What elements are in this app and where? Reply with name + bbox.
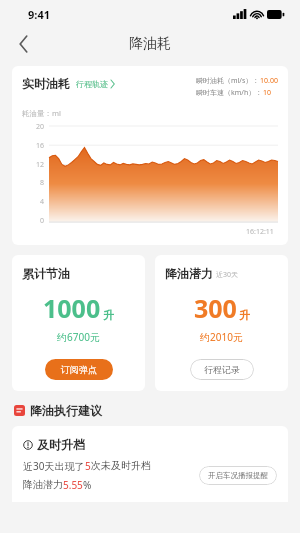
button[interactable]: 及时升档 bbox=[12, 426, 288, 502]
staticText: 行程记录 bbox=[204, 364, 240, 375]
button[interactable]: 开启车况播报提醒 bbox=[199, 466, 277, 485]
staticText: 8 bbox=[39, 178, 44, 188]
button[interactable]: 累计节油 bbox=[12, 255, 145, 391]
staticText: 降油执行建议 bbox=[30, 403, 102, 418]
staticText: 降油潜力 bbox=[165, 266, 213, 281]
staticText: 近30天 bbox=[216, 270, 239, 280]
staticText: 近30天出现了 bbox=[23, 459, 85, 473]
staticText: 9:41 bbox=[28, 7, 50, 22]
staticText: 降油潜力 bbox=[23, 478, 63, 491]
staticText: 瞬时车速（km/h）： bbox=[196, 88, 263, 98]
staticText: 次未及时升档 bbox=[91, 459, 151, 472]
staticText: 16 bbox=[35, 141, 44, 151]
staticText: 0 bbox=[39, 216, 44, 226]
staticText: 升 bbox=[103, 308, 114, 322]
staticText: 行程轨迹 bbox=[76, 79, 108, 89]
staticText: 约6700元 bbox=[57, 330, 100, 344]
staticText: 升 bbox=[239, 308, 250, 322]
button[interactable]: 降油潜力 bbox=[155, 255, 288, 391]
staticText: 5.55 bbox=[63, 478, 83, 492]
staticText: 4 bbox=[39, 197, 44, 207]
staticText: 约2010元 bbox=[200, 330, 243, 344]
staticText: 12 bbox=[35, 160, 44, 170]
button[interactable]: Back bbox=[10, 30, 38, 58]
staticText: 16:12:11 bbox=[246, 227, 274, 237]
staticText: % bbox=[83, 478, 92, 492]
staticText: 订阅弹点 bbox=[61, 364, 97, 375]
button[interactable]: 行程轨迹 bbox=[76, 79, 115, 89]
staticText: 10.00 bbox=[260, 76, 278, 86]
button[interactable]: 订阅弹点 bbox=[45, 359, 113, 380]
staticText: 300 bbox=[194, 291, 237, 325]
button[interactable]: 行程记录 bbox=[190, 359, 254, 380]
staticText: 及时升档 bbox=[37, 437, 85, 452]
staticText: 开启车况播报提醒 bbox=[208, 471, 268, 480]
staticText: 1000 bbox=[43, 291, 101, 325]
staticText: 5 bbox=[85, 459, 91, 473]
staticText: 降油耗 bbox=[129, 35, 171, 53]
staticText: 10 bbox=[263, 88, 272, 98]
staticText: 瞬时油耗（ml/s）： bbox=[196, 76, 260, 86]
staticText: 耗油量：ml bbox=[22, 108, 61, 118]
staticText: 20 bbox=[35, 122, 44, 132]
staticText: 实时油耗 bbox=[22, 76, 70, 91]
staticText: 累计节油 bbox=[22, 266, 70, 281]
